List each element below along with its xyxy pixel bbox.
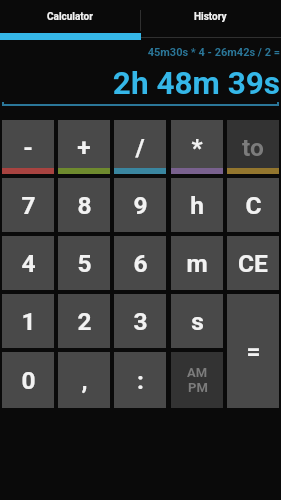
staticText: 2h 48m 39s <box>6 65 280 102</box>
button[interactable]: / <box>114 120 166 174</box>
staticText: - <box>23 133 33 162</box>
button[interactable]: CE <box>227 236 279 290</box>
button[interactable]: 9 <box>114 178 166 232</box>
staticText: 7 <box>21 191 36 220</box>
button[interactable]: - <box>2 120 54 174</box>
staticText: = <box>246 337 261 366</box>
staticText: 45m30s * 4 - 26m42s / 2 = <box>6 46 280 59</box>
staticText: 5 <box>77 249 92 278</box>
staticText: 8 <box>77 191 92 220</box>
staticText: : <box>137 366 144 395</box>
staticText: + <box>77 133 91 162</box>
button[interactable]: 5 <box>58 236 110 290</box>
staticText: 0 <box>21 366 36 395</box>
button[interactable]: 4 <box>2 236 54 290</box>
button[interactable]: 6 <box>114 236 166 290</box>
staticText: / <box>135 133 145 162</box>
button[interactable]: + <box>58 120 110 174</box>
staticText: 4 <box>21 249 36 278</box>
button[interactable]: 8 <box>58 178 110 232</box>
button[interactable]: C <box>227 178 279 232</box>
button[interactable]: = <box>227 294 279 408</box>
button[interactable]: 0 <box>2 352 54 408</box>
staticText: 6 <box>133 249 148 278</box>
staticText: C <box>245 191 262 220</box>
button[interactable]: m <box>171 236 223 290</box>
button[interactable]: 3 <box>114 294 166 348</box>
staticText: s <box>191 307 204 336</box>
staticText: * <box>191 133 203 162</box>
staticText: to <box>242 133 264 162</box>
button[interactable]: 7 <box>2 178 54 232</box>
button[interactable]: 1 <box>2 294 54 348</box>
button[interactable]: 2 <box>58 294 110 348</box>
button[interactable]: to <box>227 120 279 174</box>
staticText: , <box>81 366 88 395</box>
staticText: 2 <box>77 307 92 336</box>
staticText: m <box>186 249 208 278</box>
button[interactable]: h <box>171 178 223 232</box>
button[interactable]: History <box>140 0 281 33</box>
staticText: CE <box>238 249 268 278</box>
button[interactable]: AM <box>171 352 223 408</box>
staticText: PM <box>188 380 208 395</box>
staticText: 1 <box>21 307 36 336</box>
button[interactable]: , <box>58 352 110 408</box>
staticText: AM <box>187 365 208 380</box>
staticText: Calculator <box>47 11 93 23</box>
staticText: h <box>190 191 204 220</box>
staticText: History <box>194 11 227 23</box>
staticText: 3 <box>133 307 148 336</box>
button[interactable]: : <box>114 352 166 408</box>
button[interactable]: Calculator <box>0 0 140 33</box>
button[interactable]: * <box>171 120 223 174</box>
button[interactable]: s <box>171 294 223 348</box>
staticText: 9 <box>133 191 148 220</box>
